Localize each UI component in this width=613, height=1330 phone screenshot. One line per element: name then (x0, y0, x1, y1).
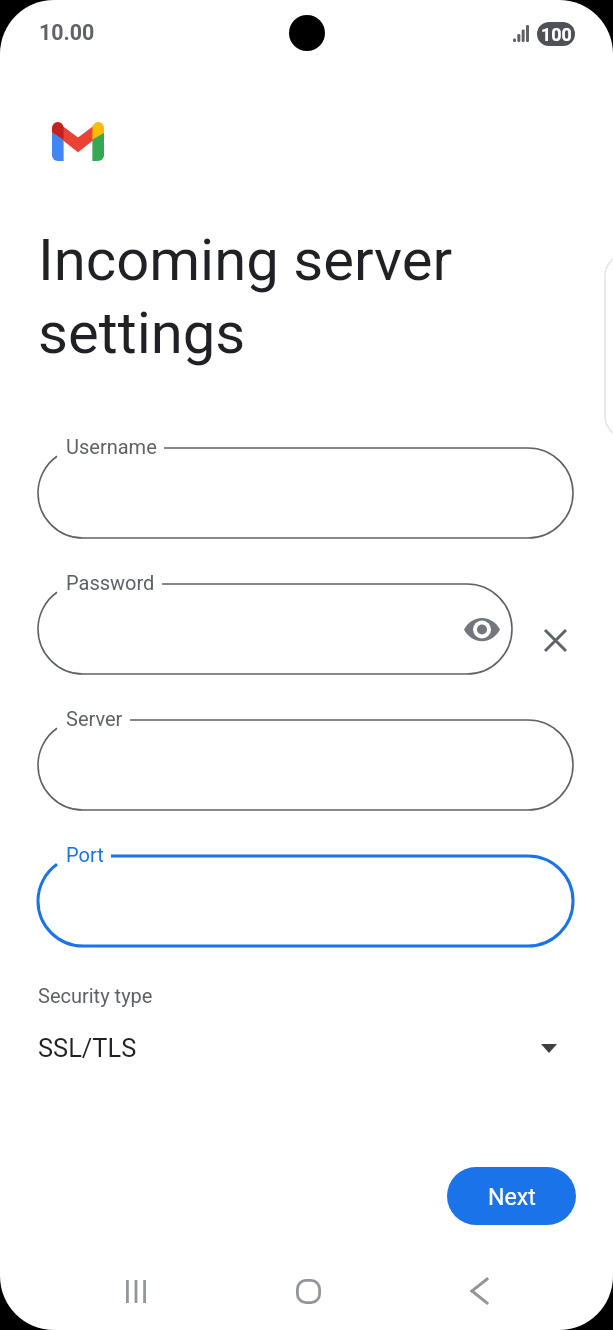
staticText: Username (66, 435, 157, 458)
staticText: Security type (38, 984, 153, 1007)
button[interactable]: Port (38, 856, 573, 946)
staticText: Port (66, 843, 104, 866)
button[interactable]: Next (447, 1167, 576, 1225)
button[interactable]: Home (268, 1251, 348, 1330)
staticText: Server (66, 707, 123, 730)
button[interactable]: Password (38, 584, 512, 674)
button[interactable]: Show password (458, 605, 506, 653)
staticText: Password (66, 571, 155, 594)
button[interactable]: Recent apps (96, 1251, 176, 1330)
button[interactable]: SSL/TLS (38, 1026, 557, 1070)
button[interactable]: Back (439, 1251, 519, 1330)
button[interactable]: Username (38, 448, 573, 538)
staticText: Incoming server settings (38, 226, 453, 367)
staticText: 10.00 (39, 20, 95, 45)
staticText: 100 (541, 24, 572, 45)
staticText: Next (488, 1183, 536, 1210)
button[interactable]: Clear password error (527, 612, 583, 668)
button[interactable]: Server (38, 720, 573, 810)
staticText: SSL/TLS (38, 1033, 137, 1063)
